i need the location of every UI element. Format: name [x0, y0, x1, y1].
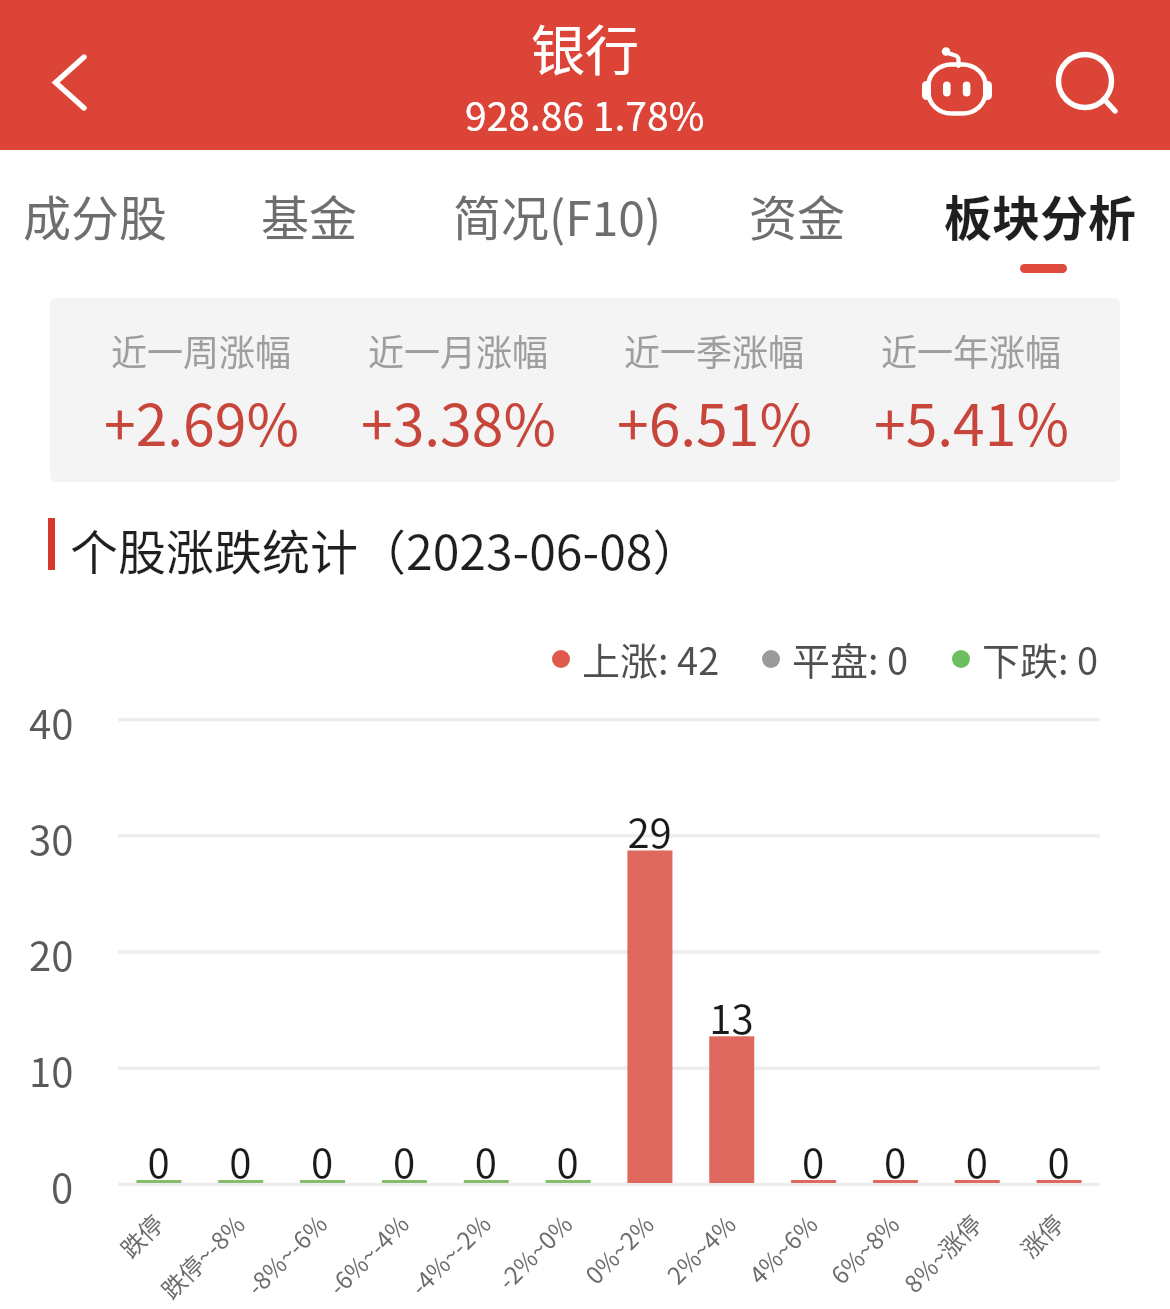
staticText: 下跌: 0: [982, 631, 1099, 686]
staticText: 近一月涨幅: [368, 324, 549, 376]
staticText: 平盘: 0: [792, 631, 909, 686]
button[interactable]: 上涨: 42: [552, 631, 720, 686]
staticText: 个股涨跌统计（2023-06-08）: [70, 514, 701, 584]
staticText: +2.69%: [104, 380, 299, 463]
staticText: 银行: [531, 8, 639, 86]
staticText: 近一周涨幅: [111, 324, 292, 376]
staticText: 资金: [749, 180, 846, 250]
staticText: 成分股: [23, 180, 168, 250]
button[interactable]: 平盘: 0: [762, 631, 909, 686]
staticText: +6.51%: [617, 380, 812, 463]
staticText: +3.38%: [361, 380, 556, 463]
staticText: 板块分析: [944, 180, 1137, 250]
button[interactable]: Back: [22, 28, 118, 124]
button[interactable]: 资金: [735, 168, 860, 262]
staticText: +5.41%: [874, 380, 1069, 463]
staticText: 928.86 1.78%: [465, 86, 705, 142]
button[interactable]: 基金: [247, 168, 372, 262]
button[interactable]: 板块分析: [930, 168, 1151, 285]
staticText: 上涨: 42: [582, 631, 720, 686]
staticText: 基金: [261, 180, 358, 250]
staticText: 近一年涨幅: [881, 324, 1062, 376]
button[interactable]: 下跌: 0: [952, 631, 1099, 686]
button[interactable]: AI assistant: [909, 41, 1005, 137]
button[interactable]: Search: [1037, 33, 1133, 129]
button[interactable]: 简况(F10): [439, 168, 676, 262]
staticText: 简况(F10): [453, 180, 662, 250]
staticText: 近一季涨幅: [624, 324, 805, 376]
button[interactable]: 成分股: [9, 168, 182, 262]
